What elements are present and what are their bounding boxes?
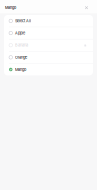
staticText: Mango bbox=[5, 5, 16, 10]
button[interactable]: Select All bbox=[4, 15, 93, 27]
button[interactable]: Mango bbox=[4, 64, 93, 75]
button[interactable]: Orange bbox=[4, 51, 93, 63]
staticText: Apple bbox=[15, 31, 25, 35]
button[interactable]: Close bbox=[83, 5, 89, 11]
staticText: Mango bbox=[15, 67, 26, 72]
button[interactable]: Apple bbox=[4, 27, 93, 39]
staticText: Select All bbox=[15, 19, 31, 23]
staticText: Banana bbox=[15, 43, 28, 48]
button[interactable]: Banana bbox=[4, 39, 93, 51]
staticText: Orange bbox=[15, 55, 27, 60]
